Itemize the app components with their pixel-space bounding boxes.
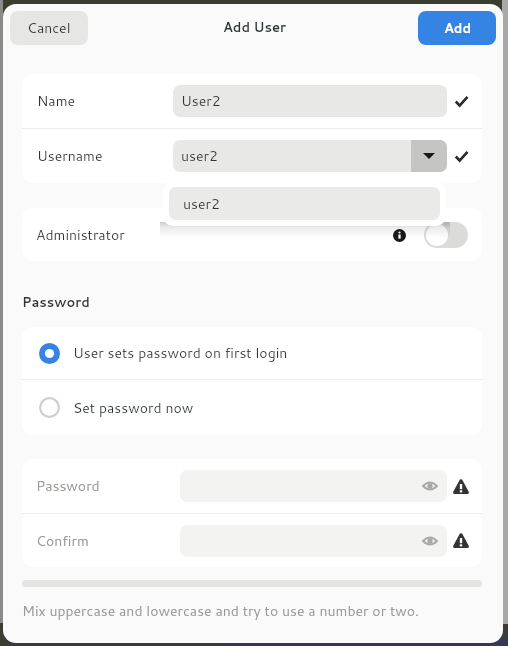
staticText: Username (37, 146, 173, 166)
staticText: User sets password on first login (73, 343, 288, 363)
staticText: Add User (223, 18, 287, 36)
staticText: Add (444, 19, 471, 37)
staticText: Set password now (73, 398, 194, 418)
button[interactable]: Set password now (22, 380, 482, 435)
staticText: User2 (181, 91, 221, 111)
staticText: Cancel (27, 18, 71, 38)
button[interactable]: Cancel (10, 11, 88, 45)
button[interactable]: Info (388, 224, 410, 246)
staticText: user2 (183, 194, 220, 214)
staticText: Password (36, 476, 180, 496)
staticText: Administrator (36, 225, 125, 245)
button[interactable]: Administrator toggle (424, 222, 468, 248)
staticText: Password (22, 293, 90, 311)
button[interactable]: Show password (423, 535, 437, 547)
button[interactable]: User sets password on first login (22, 327, 482, 379)
staticText: user2 (181, 146, 218, 166)
other: Warning (453, 479, 469, 494)
staticText: Name (37, 91, 173, 111)
button[interactable]: Show suggestions (411, 140, 447, 172)
button[interactable]: Add (418, 11, 496, 45)
staticText: Confirm (36, 531, 180, 551)
staticText: Mix uppercase and lowercase and try to u… (22, 601, 419, 621)
button[interactable]: user2 (169, 187, 440, 220)
other: Warning (453, 533, 469, 548)
button[interactable]: Show password (423, 480, 437, 492)
